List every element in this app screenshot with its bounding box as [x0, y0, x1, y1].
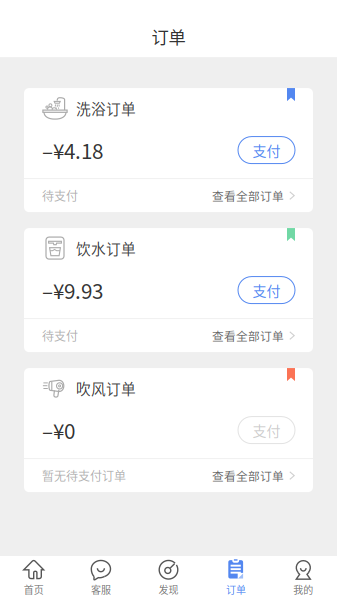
staticText: 查看全部订单	[212, 327, 284, 344]
staticText: 待支付	[42, 187, 78, 204]
staticText: 查看全部订单	[212, 187, 284, 204]
staticText: 洗浴订单	[76, 97, 136, 119]
staticText: 首页	[24, 582, 44, 597]
button[interactable]: 查看全部订单	[212, 187, 295, 204]
staticText: 订单	[151, 24, 185, 49]
staticText: 查看全部订单	[212, 467, 284, 484]
button[interactable]: 支付	[238, 137, 295, 164]
staticText: 支付	[252, 140, 280, 160]
staticText: 待支付	[42, 327, 78, 344]
staticText: –¥9.93	[42, 275, 103, 305]
staticText: –¥4.18	[42, 135, 103, 165]
button[interactable]: 查看全部订单	[212, 327, 295, 344]
staticText: 支付	[252, 420, 280, 440]
button[interactable]: 首页	[0, 556, 67, 600]
staticText: 我的	[293, 582, 313, 597]
staticText: 发现	[158, 582, 178, 597]
staticText: 支付	[252, 280, 280, 300]
staticText: 订单	[226, 582, 246, 597]
button[interactable]: 支付	[238, 277, 295, 304]
staticText: 暂无待支付订单	[42, 467, 126, 484]
staticText: 吹风订单	[76, 377, 136, 399]
button[interactable]: 我的	[270, 556, 337, 600]
staticText: –¥0	[42, 415, 75, 445]
button[interactable]: 查看全部订单	[212, 467, 295, 484]
button[interactable]: 订单	[202, 556, 270, 600]
staticText: 客服	[91, 582, 111, 597]
button[interactable]: 发现	[135, 556, 202, 600]
button[interactable]: 客服	[67, 556, 135, 600]
staticText: 饮水订单	[76, 237, 136, 259]
button[interactable]: 支付	[238, 417, 295, 444]
